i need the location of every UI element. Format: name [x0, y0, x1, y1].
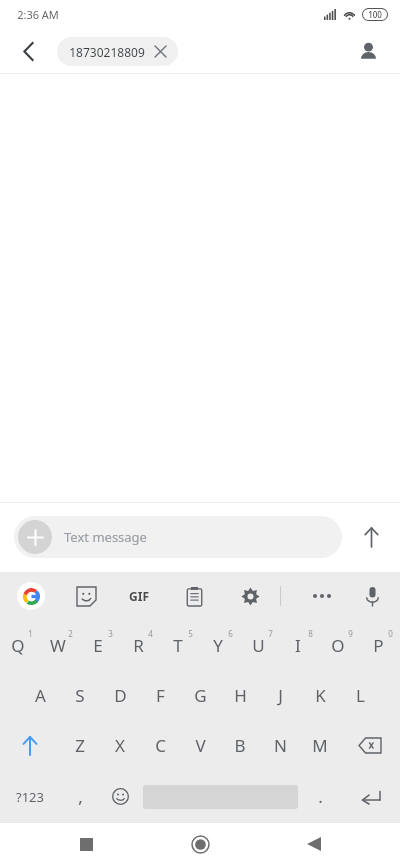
- button[interactable]: N: [260, 720, 300, 771]
- button[interactable]: GIF: [118, 575, 160, 617]
- staticText: V: [195, 734, 206, 757]
- button[interactable]: Stickers: [66, 576, 106, 616]
- button[interactable]: E: [80, 620, 120, 670]
- staticText: Y: [213, 634, 223, 657]
- button[interactable]: S: [60, 670, 100, 720]
- staticText: D: [114, 684, 127, 707]
- button[interactable]: Back: [10, 32, 48, 70]
- staticText: O: [331, 634, 345, 657]
- staticText: K: [315, 684, 326, 707]
- staticText: F: [156, 684, 165, 707]
- staticText: 7: [268, 628, 273, 639]
- button[interactable]: I: [280, 620, 320, 670]
- button[interactable]: C: [140, 720, 180, 771]
- staticText: R: [133, 634, 144, 657]
- staticText: A: [35, 684, 46, 707]
- button[interactable]: .: [300, 771, 340, 822]
- button[interactable]: O: [320, 620, 360, 670]
- button[interactable]: Enter: [340, 771, 400, 822]
- staticText: .: [318, 785, 323, 808]
- button[interactable]: Attach: [14, 516, 342, 558]
- staticText: 1: [28, 628, 33, 639]
- staticText: 2:36 AM: [17, 7, 59, 22]
- button[interactable]: M: [300, 720, 340, 771]
- button[interactable]: Clipboard: [174, 576, 214, 616]
- button[interactable]: R: [120, 620, 160, 670]
- staticText: G: [194, 684, 207, 707]
- button[interactable]: ,: [60, 771, 100, 822]
- button[interactable]: V: [180, 720, 220, 771]
- staticText: 4: [148, 628, 153, 639]
- staticText: C: [155, 734, 166, 757]
- button[interactable]: Back: [286, 822, 342, 866]
- button[interactable]: X: [100, 720, 140, 771]
- button[interactable]: Q: [0, 620, 40, 670]
- button[interactable]: U: [240, 620, 280, 670]
- button[interactable]: D: [100, 670, 140, 720]
- staticText: 9: [348, 628, 353, 639]
- staticText: 6: [228, 628, 233, 639]
- button[interactable]: P: [360, 620, 400, 670]
- button[interactable]: F: [140, 670, 180, 720]
- staticText: H: [234, 684, 247, 707]
- button[interactable]: A: [20, 670, 60, 720]
- staticText: 2: [68, 628, 73, 639]
- staticText: X: [115, 734, 125, 757]
- button[interactable]: H: [220, 670, 260, 720]
- staticText: 8: [308, 628, 313, 639]
- staticText: S: [75, 684, 85, 707]
- button[interactable]: ?123: [0, 771, 60, 822]
- staticText: Z: [75, 734, 85, 757]
- button[interactable]: Send: [342, 513, 400, 561]
- staticText: GIF: [129, 588, 149, 604]
- button[interactable]: Z: [60, 720, 100, 771]
- staticText: 5: [188, 628, 193, 639]
- staticText: U: [252, 634, 265, 657]
- staticText: J: [278, 684, 283, 707]
- button[interactable]: G: [180, 670, 220, 720]
- button[interactable]: B: [220, 720, 260, 771]
- staticText: 0: [388, 628, 393, 639]
- button[interactable]: More options: [302, 576, 342, 616]
- button[interactable]: Contact details: [348, 31, 388, 71]
- staticText: Q: [11, 634, 25, 657]
- button[interactable]: Voice input: [352, 576, 392, 616]
- button[interactable]: Attach: [18, 520, 52, 554]
- staticText: E: [93, 634, 103, 657]
- staticText: Text message: [64, 528, 147, 546]
- button[interactable]: Emoji: [100, 771, 140, 822]
- staticText: ,: [78, 785, 83, 808]
- staticText: L: [356, 684, 365, 707]
- button[interactable]: Backspace: [340, 720, 400, 771]
- button[interactable]: T: [160, 620, 200, 670]
- button[interactable]: K: [300, 670, 340, 720]
- button[interactable]: Shift: [0, 720, 60, 771]
- staticText: W: [50, 634, 66, 657]
- button[interactable]: Y: [200, 620, 240, 670]
- button[interactable]: Settings: [230, 576, 270, 616]
- button[interactable]: J: [260, 670, 300, 720]
- staticText: M: [312, 734, 328, 757]
- staticText: ?123: [16, 788, 44, 806]
- button[interactable]: Home: [172, 822, 228, 866]
- staticText: N: [274, 734, 287, 757]
- button[interactable]: Space: [140, 771, 300, 822]
- button[interactable]: Google: [10, 575, 52, 617]
- button[interactable]: W: [40, 620, 80, 670]
- staticText: I: [295, 634, 301, 657]
- staticText: T: [173, 634, 183, 657]
- button[interactable]: 18730218809: [57, 37, 178, 66]
- staticText: 100: [368, 9, 382, 20]
- staticText: 18730218809: [69, 44, 145, 60]
- staticText: P: [373, 634, 384, 657]
- staticText: 3: [108, 628, 113, 639]
- button[interactable]: L: [340, 670, 380, 720]
- button[interactable]: Recent apps: [58, 822, 114, 866]
- staticText: B: [234, 734, 246, 757]
